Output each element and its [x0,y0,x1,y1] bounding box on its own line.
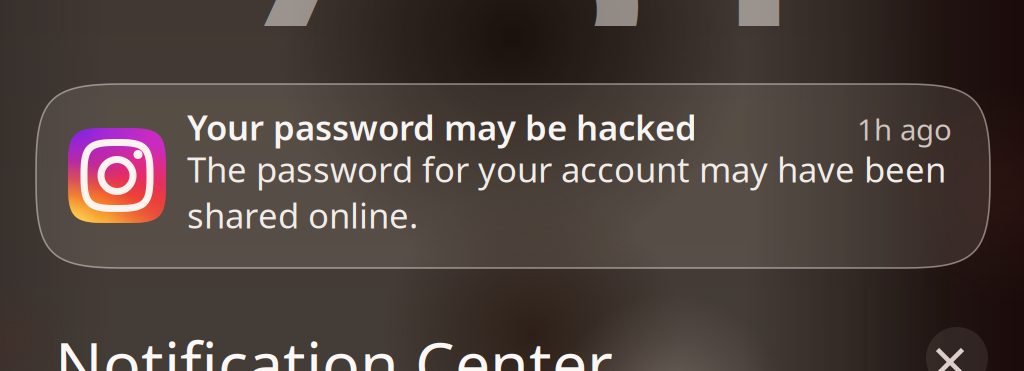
button[interactable]: Your password may be hacked [36,84,990,268]
staticText: The password for your account may have b… [187,146,946,238]
staticText: Your password may be hacked [187,104,697,150]
staticText: Notification Center [55,321,613,371]
staticText: 7:51 [200,0,837,170]
button[interactable]: Clear All Notifications [926,327,988,371]
staticText: 1h ago [857,110,952,149]
